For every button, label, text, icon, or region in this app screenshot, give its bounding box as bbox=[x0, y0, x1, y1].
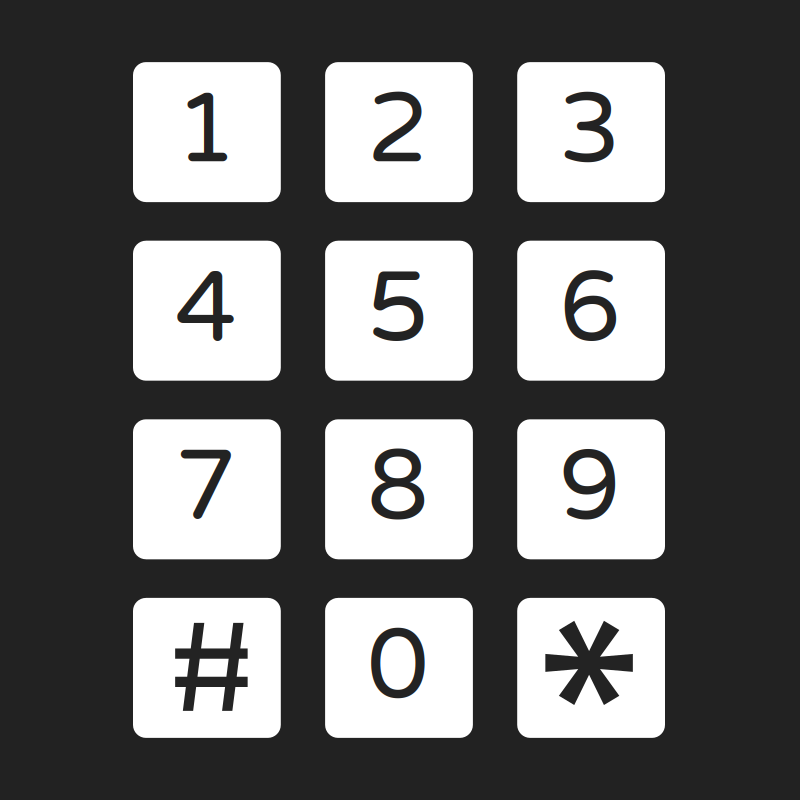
button[interactable]: 3 bbox=[517, 62, 665, 202]
staticText: 9 bbox=[559, 427, 621, 540]
staticText: 6 bbox=[559, 248, 621, 361]
button[interactable]: 4 bbox=[133, 241, 281, 381]
button[interactable]: 5 bbox=[325, 241, 473, 381]
staticText: 4 bbox=[175, 248, 237, 361]
button[interactable]: Star bbox=[517, 598, 665, 738]
staticText: 3 bbox=[559, 70, 621, 182]
staticText: 0 bbox=[367, 605, 429, 718]
button[interactable]: 7 bbox=[133, 419, 281, 559]
button[interactable]: 6 bbox=[517, 241, 665, 381]
button[interactable]: 1 bbox=[133, 62, 281, 202]
button[interactable]: Hash bbox=[133, 598, 281, 738]
button[interactable]: 2 bbox=[325, 62, 473, 202]
staticText: 2 bbox=[367, 70, 429, 182]
staticText: 7 bbox=[175, 427, 237, 540]
staticText: 8 bbox=[367, 427, 429, 540]
staticText: 5 bbox=[367, 248, 429, 361]
button[interactable]: 0 bbox=[325, 598, 473, 738]
button[interactable]: 9 bbox=[517, 419, 665, 559]
button[interactable]: 8 bbox=[325, 419, 473, 559]
staticText: 1 bbox=[175, 70, 237, 182]
